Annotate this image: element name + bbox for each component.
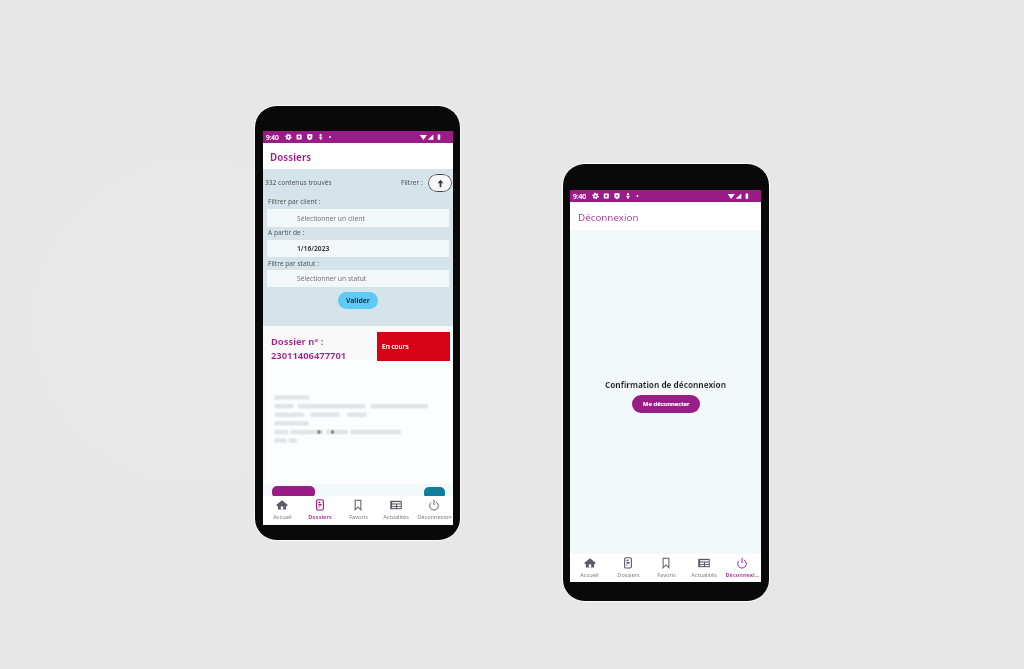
staticText: A partir de : (268, 228, 305, 237)
staticText: Confirmation de déconnexion (605, 379, 727, 390)
staticText: Dossiers (617, 571, 640, 579)
staticText: 9:40 (573, 192, 587, 201)
staticText: Déconnexion (417, 513, 452, 521)
button[interactable]: Valider (338, 292, 378, 309)
button[interactable]: Favoris (647, 554, 685, 582)
staticText: Favoris (349, 513, 368, 521)
button[interactable]: Sélectionner un statut (267, 270, 449, 287)
button[interactable]: Déconnexion (415, 496, 453, 524)
staticText: Accueil (580, 571, 599, 579)
staticText: Favoris (657, 571, 676, 579)
staticText: Filtrer par client : (268, 197, 321, 206)
button[interactable]: Favoris (339, 496, 377, 524)
staticText: Filtre par statut : (268, 259, 319, 268)
staticText: En cours (382, 342, 409, 351)
staticText: 332 contenus trouvés (265, 178, 332, 187)
staticText: Dossiers (270, 151, 312, 164)
staticText: 1/16/2023 (297, 244, 330, 253)
staticText: 9:40 (266, 133, 279, 142)
staticText: Actualités (383, 513, 409, 521)
button[interactable]: Dossiers (609, 554, 647, 582)
button[interactable]: Accueil (263, 496, 301, 524)
button[interactable]: Filtrer (428, 174, 452, 192)
staticText: 23011406477701 (271, 349, 347, 362)
button[interactable]: 1/16/2023 (267, 240, 449, 257)
staticText: Déconnexion (578, 211, 639, 224)
staticText: Me déconnecter (643, 400, 690, 408)
button[interactable]: Déconnexi… (723, 554, 761, 582)
staticText: Accueil (273, 513, 292, 521)
staticText: Valider (346, 296, 370, 305)
button[interactable]: Dossiers (301, 496, 339, 524)
button[interactable]: Sélectionner un client (267, 209, 449, 227)
staticText: Sélectionner un statut (297, 274, 367, 283)
staticText: Dossiers (308, 513, 332, 521)
button[interactable]: Me déconnecter (632, 395, 700, 413)
staticText: Dossier n° : (271, 335, 324, 348)
button[interactable]: Action principale (272, 486, 315, 498)
staticText: Sélectionner un client (297, 214, 365, 223)
button[interactable]: Accueil (570, 554, 609, 582)
staticText: Actualités (691, 571, 717, 579)
staticText: Déconnexi… (725, 571, 760, 579)
staticText: Filtrer : (401, 178, 423, 187)
button[interactable]: Actualités (377, 496, 415, 524)
button[interactable]: Actualités (685, 554, 723, 582)
button[interactable]: Action secondaire (424, 487, 445, 499)
